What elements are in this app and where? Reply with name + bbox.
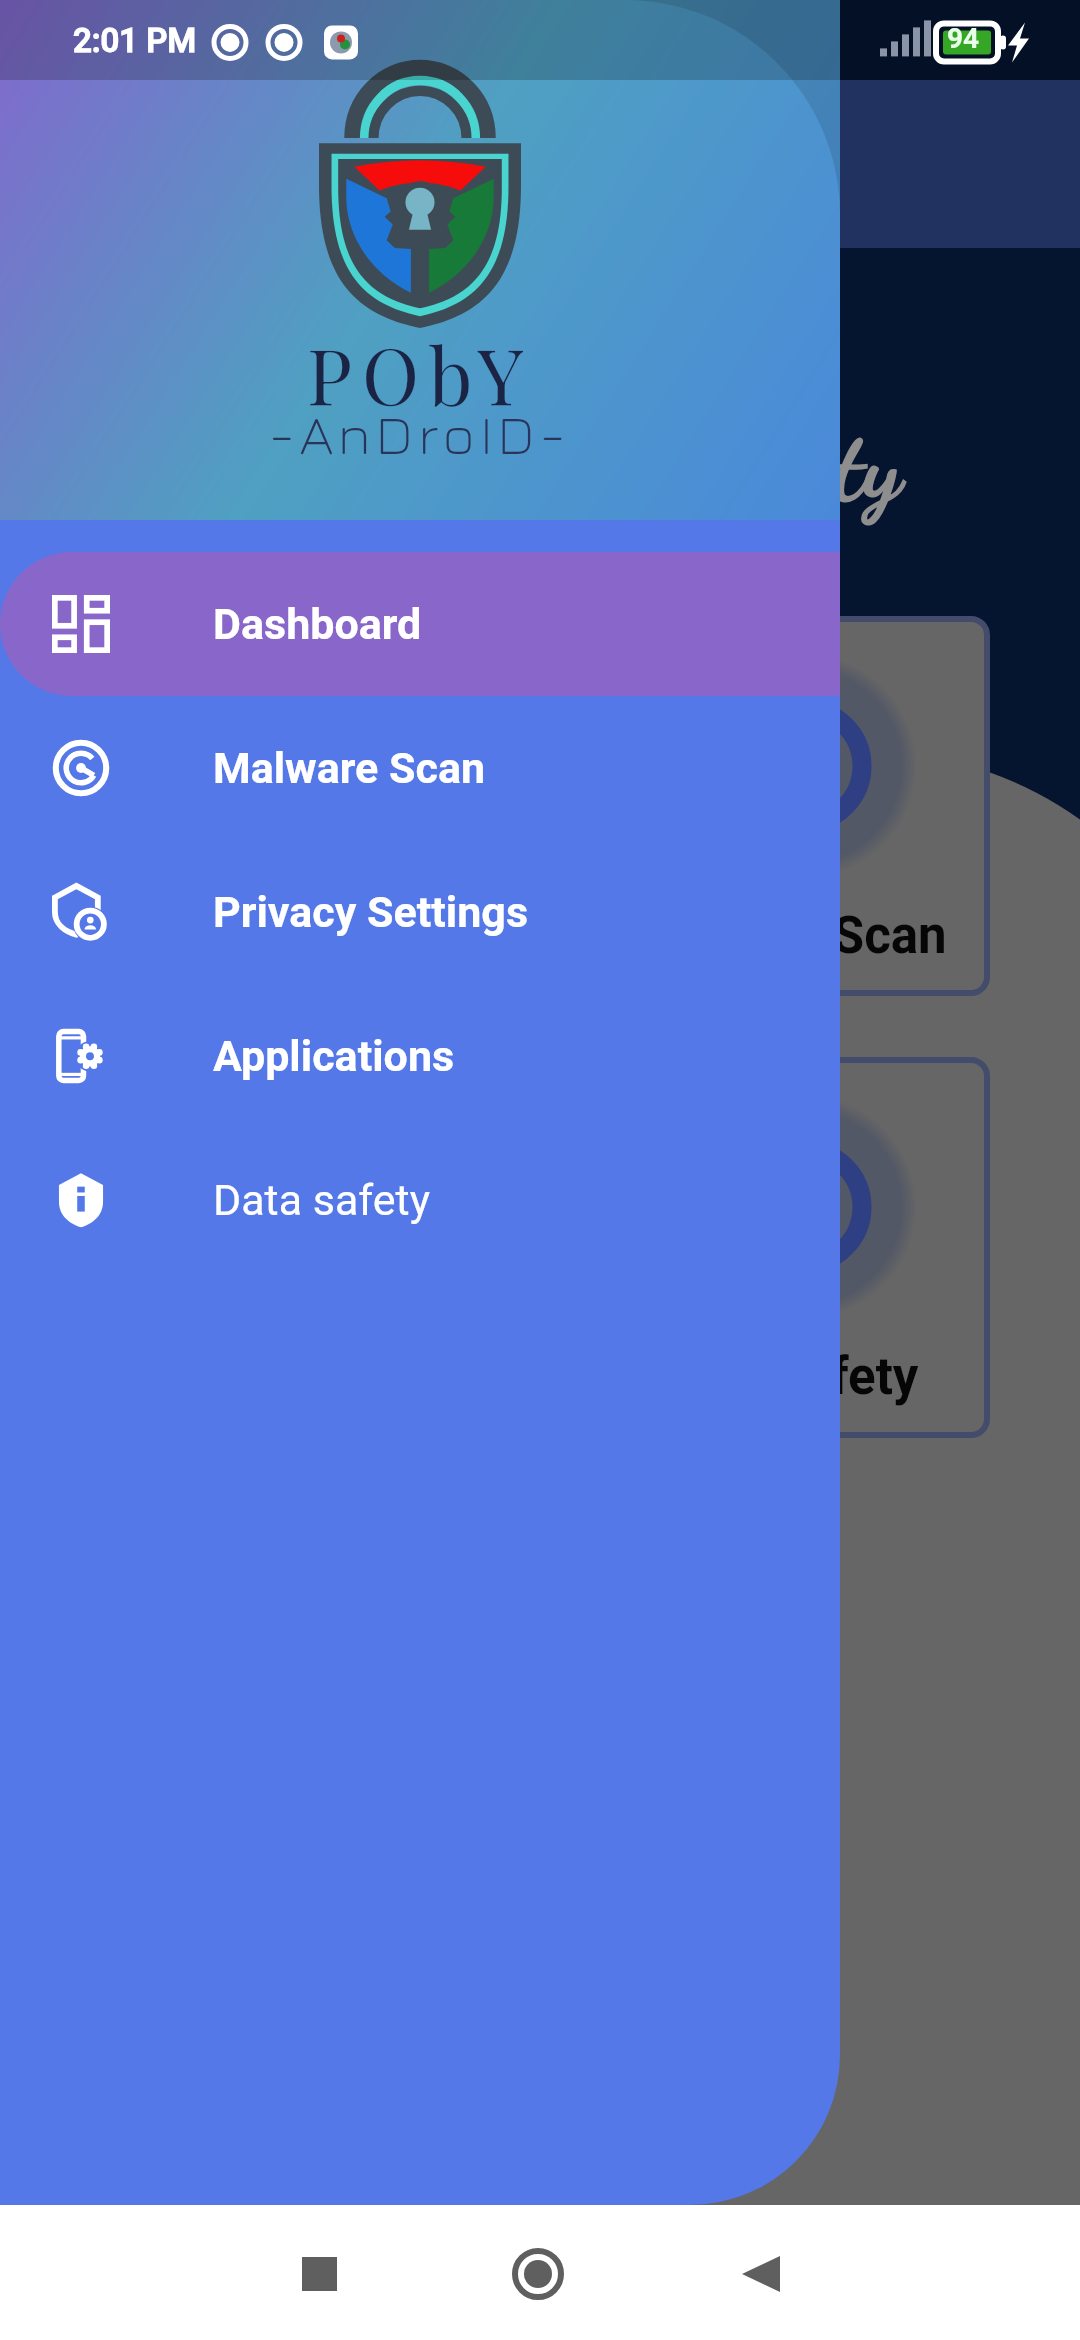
button[interactable]: Applications (0, 984, 840, 1128)
button[interactable]: Privacy Settings (0, 840, 840, 984)
staticText: 2:01 PM (73, 21, 197, 60)
staticText: -AnDroID- (269, 400, 571, 466)
staticText: Security (624, 409, 902, 524)
staticText: Malware Scan (624, 906, 947, 966)
staticText: PObY (307, 322, 534, 425)
staticText: Dashboard (213, 599, 422, 649)
staticText: Data safety (213, 1175, 430, 1225)
staticText: Malware Scan (213, 743, 486, 793)
button[interactable]: Malware Scan (0, 696, 840, 840)
staticText: Data safety (659, 1347, 919, 1407)
button[interactable]: Dashboard (0, 552, 840, 696)
staticText: Privacy Settings (213, 887, 529, 937)
button[interactable]: Data safety (0, 1128, 840, 1272)
staticText: Applications (213, 1031, 455, 1081)
staticText: 94 (947, 22, 980, 55)
